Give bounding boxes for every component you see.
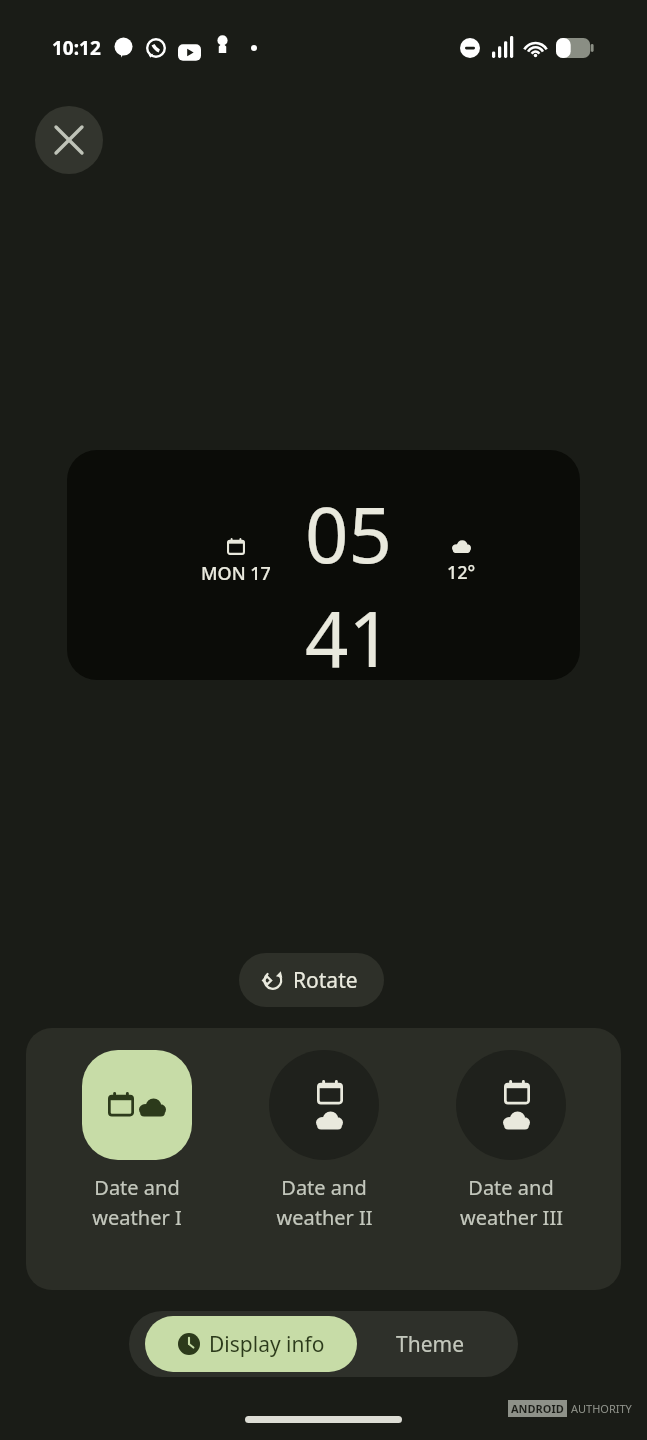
- button[interactable]: Display info: [145, 1316, 357, 1372]
- staticText: ANDROID: [511, 1401, 564, 1416]
- staticText: Date and: [468, 1174, 554, 1201]
- staticText: 05: [305, 482, 392, 586]
- staticText: Display info: [209, 1330, 325, 1359]
- staticText: 12°: [447, 560, 476, 585]
- staticText: weather I: [92, 1204, 182, 1231]
- staticText: Theme: [396, 1330, 464, 1359]
- button[interactable]: Close: [35, 106, 103, 174]
- staticText: Date and: [94, 1174, 180, 1201]
- staticText: weather III: [460, 1204, 563, 1231]
- staticText: AUTHORITY: [571, 1401, 632, 1416]
- staticText: weather II: [276, 1204, 373, 1231]
- staticText: Date and: [281, 1174, 367, 1201]
- staticText: Rotate: [293, 966, 358, 995]
- button[interactable]: Theme: [357, 1316, 502, 1372]
- staticText: MON 17: [201, 561, 271, 586]
- staticText: 41: [305, 586, 392, 680]
- button[interactable]: Date and: [81, 1050, 193, 1231]
- button[interactable]: Date and: [268, 1050, 380, 1231]
- button[interactable]: Rotate: [239, 953, 384, 1007]
- button[interactable]: Date and: [455, 1050, 567, 1231]
- button[interactable]: MON 17: [67, 450, 580, 680]
- staticText: 10:12: [52, 35, 101, 61]
